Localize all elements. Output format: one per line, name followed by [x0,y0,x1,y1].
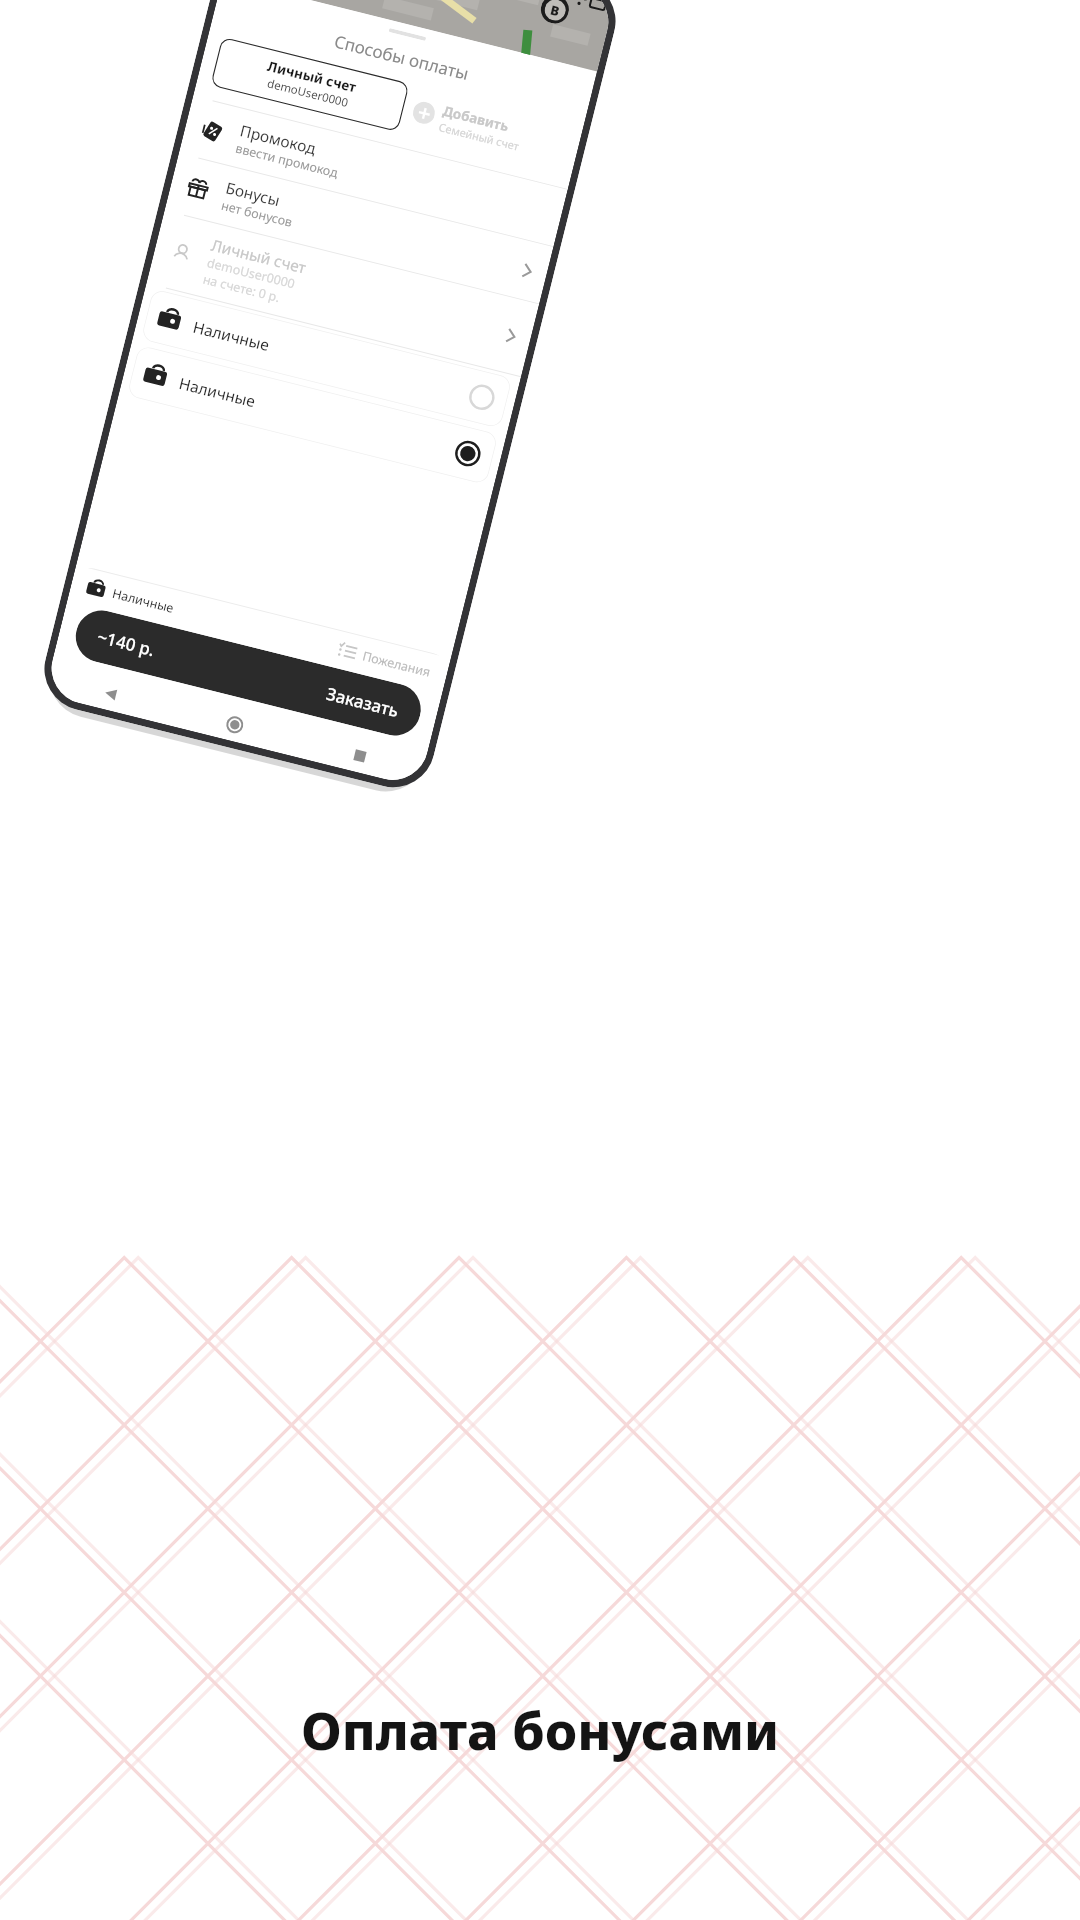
staticText: Наличные [110,585,176,617]
staticText: Бонусы [224,176,283,210]
staticText: Личный счет [209,234,309,277]
button[interactable]: Бонусы [165,154,553,303]
staticText: нет бонусов [220,197,294,231]
staticText: B [549,1,562,20]
staticText: Заказать [324,682,401,722]
button[interactable]: Наличные [127,345,498,485]
staticText: ввести промокод [234,140,340,181]
button[interactable]: Наличные [141,289,512,429]
staticText: Наличные [191,316,272,355]
button[interactable]: Наличные [85,578,176,617]
staticText: Наличные [177,372,258,411]
staticText: Оплата бонусами [301,1694,779,1765]
staticText: demoUser0000 [266,75,350,111]
button[interactable]: Промокод [179,96,568,246]
staticText: на счете: 0 р. [201,271,282,306]
staticText: Семейный счет [437,119,521,154]
button[interactable]: Личный счет [210,37,410,132]
button[interactable]: Добавить [407,86,570,172]
staticText: Промокод [238,119,319,158]
button[interactable]: Пожелания [336,640,433,681]
staticText: Добавить [441,102,511,136]
button[interactable]: Home [168,692,302,756]
button[interactable]: Личный счет [147,211,539,376]
staticText: Личный счет [266,57,358,96]
staticText: demoUser0000 [205,254,297,292]
button[interactable]: ~140 р. [70,605,426,741]
staticText: Пожелания [361,647,433,681]
button[interactable]: Back [44,661,176,725]
staticText: Способы оплаты [332,29,471,85]
staticText: ~140 р. [95,625,158,661]
button[interactable]: Recents [293,723,427,788]
